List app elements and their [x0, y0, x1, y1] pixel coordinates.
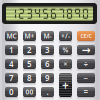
button[interactable]: M+ [23, 31, 36, 41]
staticText: 2 [27, 45, 32, 55]
staticText: 1 [9, 45, 14, 55]
staticText: = [83, 87, 88, 97]
staticText: 6 [45, 59, 50, 69]
button[interactable]: 6 [41, 59, 54, 69]
staticText: 1234567890 [9, 7, 89, 20]
staticText: ÷ [83, 59, 88, 69]
button[interactable]: = [77, 87, 95, 97]
staticText: M+ [24, 32, 34, 40]
staticText: MC [6, 32, 16, 40]
button[interactable]: → [77, 45, 95, 55]
button[interactable]: 2 [23, 45, 36, 55]
button[interactable]: MC [5, 31, 18, 41]
staticText: 5 [27, 59, 32, 69]
button[interactable]: − [77, 73, 95, 83]
button[interactable]: 00 [23, 87, 36, 97]
staticText: M- [43, 32, 51, 40]
staticText: 8 [27, 73, 32, 83]
button[interactable]: +/- [59, 31, 72, 41]
staticText: CE/C [80, 32, 91, 40]
staticText: + [62, 77, 69, 93]
staticText: 3 [45, 45, 50, 55]
button[interactable]: 5 [23, 59, 36, 69]
staticText: − [83, 73, 88, 83]
button[interactable]: × [59, 59, 72, 69]
button[interactable]: 3 [41, 45, 54, 55]
button[interactable]: 4 [5, 59, 18, 69]
staticText: 7 [9, 73, 14, 83]
staticText: . [46, 87, 48, 97]
staticText: × [63, 60, 67, 68]
button[interactable]: 9 [41, 73, 54, 83]
staticText: 4 [9, 59, 14, 69]
staticText: 0 [9, 87, 14, 97]
button[interactable]: + [59, 73, 72, 97]
button[interactable]: 7 [5, 73, 18, 83]
button[interactable]: 8 [23, 73, 36, 83]
staticText: +/- [61, 32, 70, 40]
button[interactable]: % [59, 45, 72, 55]
button[interactable]: . [41, 87, 54, 97]
staticText: 9 [45, 73, 50, 83]
staticText: 00 [25, 88, 33, 96]
button[interactable]: ÷ [77, 59, 95, 69]
button[interactable]: 1 [5, 45, 18, 55]
button[interactable]: CE/C [77, 31, 95, 41]
staticText: → [81, 44, 90, 56]
button[interactable]: 0 [5, 87, 18, 97]
button[interactable]: M- [41, 31, 54, 41]
staticText: % [62, 46, 68, 54]
